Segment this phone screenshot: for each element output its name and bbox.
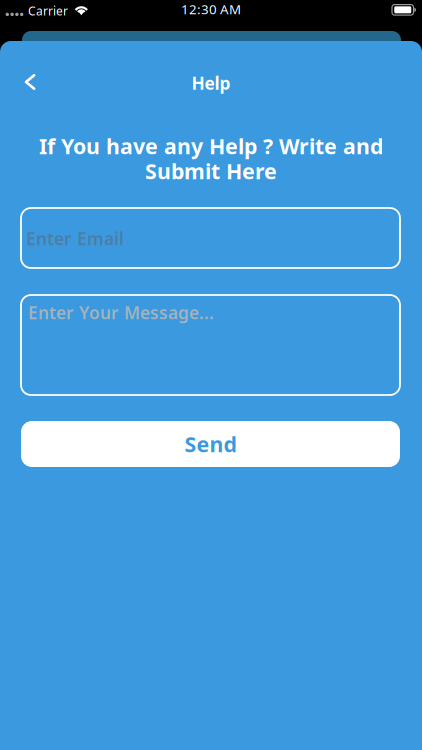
staticText: Help: [191, 71, 230, 94]
staticText: Carrier: [28, 3, 68, 19]
button[interactable]: Back: [8, 60, 52, 104]
staticText: Send: [184, 430, 236, 458]
staticText: Enter Email: [26, 227, 124, 250]
staticText: If You have any Help ? Write and: [39, 132, 383, 160]
staticText: 12:30 AM: [181, 0, 241, 18]
staticText: Submit Here: [145, 157, 277, 185]
button[interactable]: Send: [21, 421, 400, 467]
staticText: Enter Your Message...: [28, 301, 214, 324]
